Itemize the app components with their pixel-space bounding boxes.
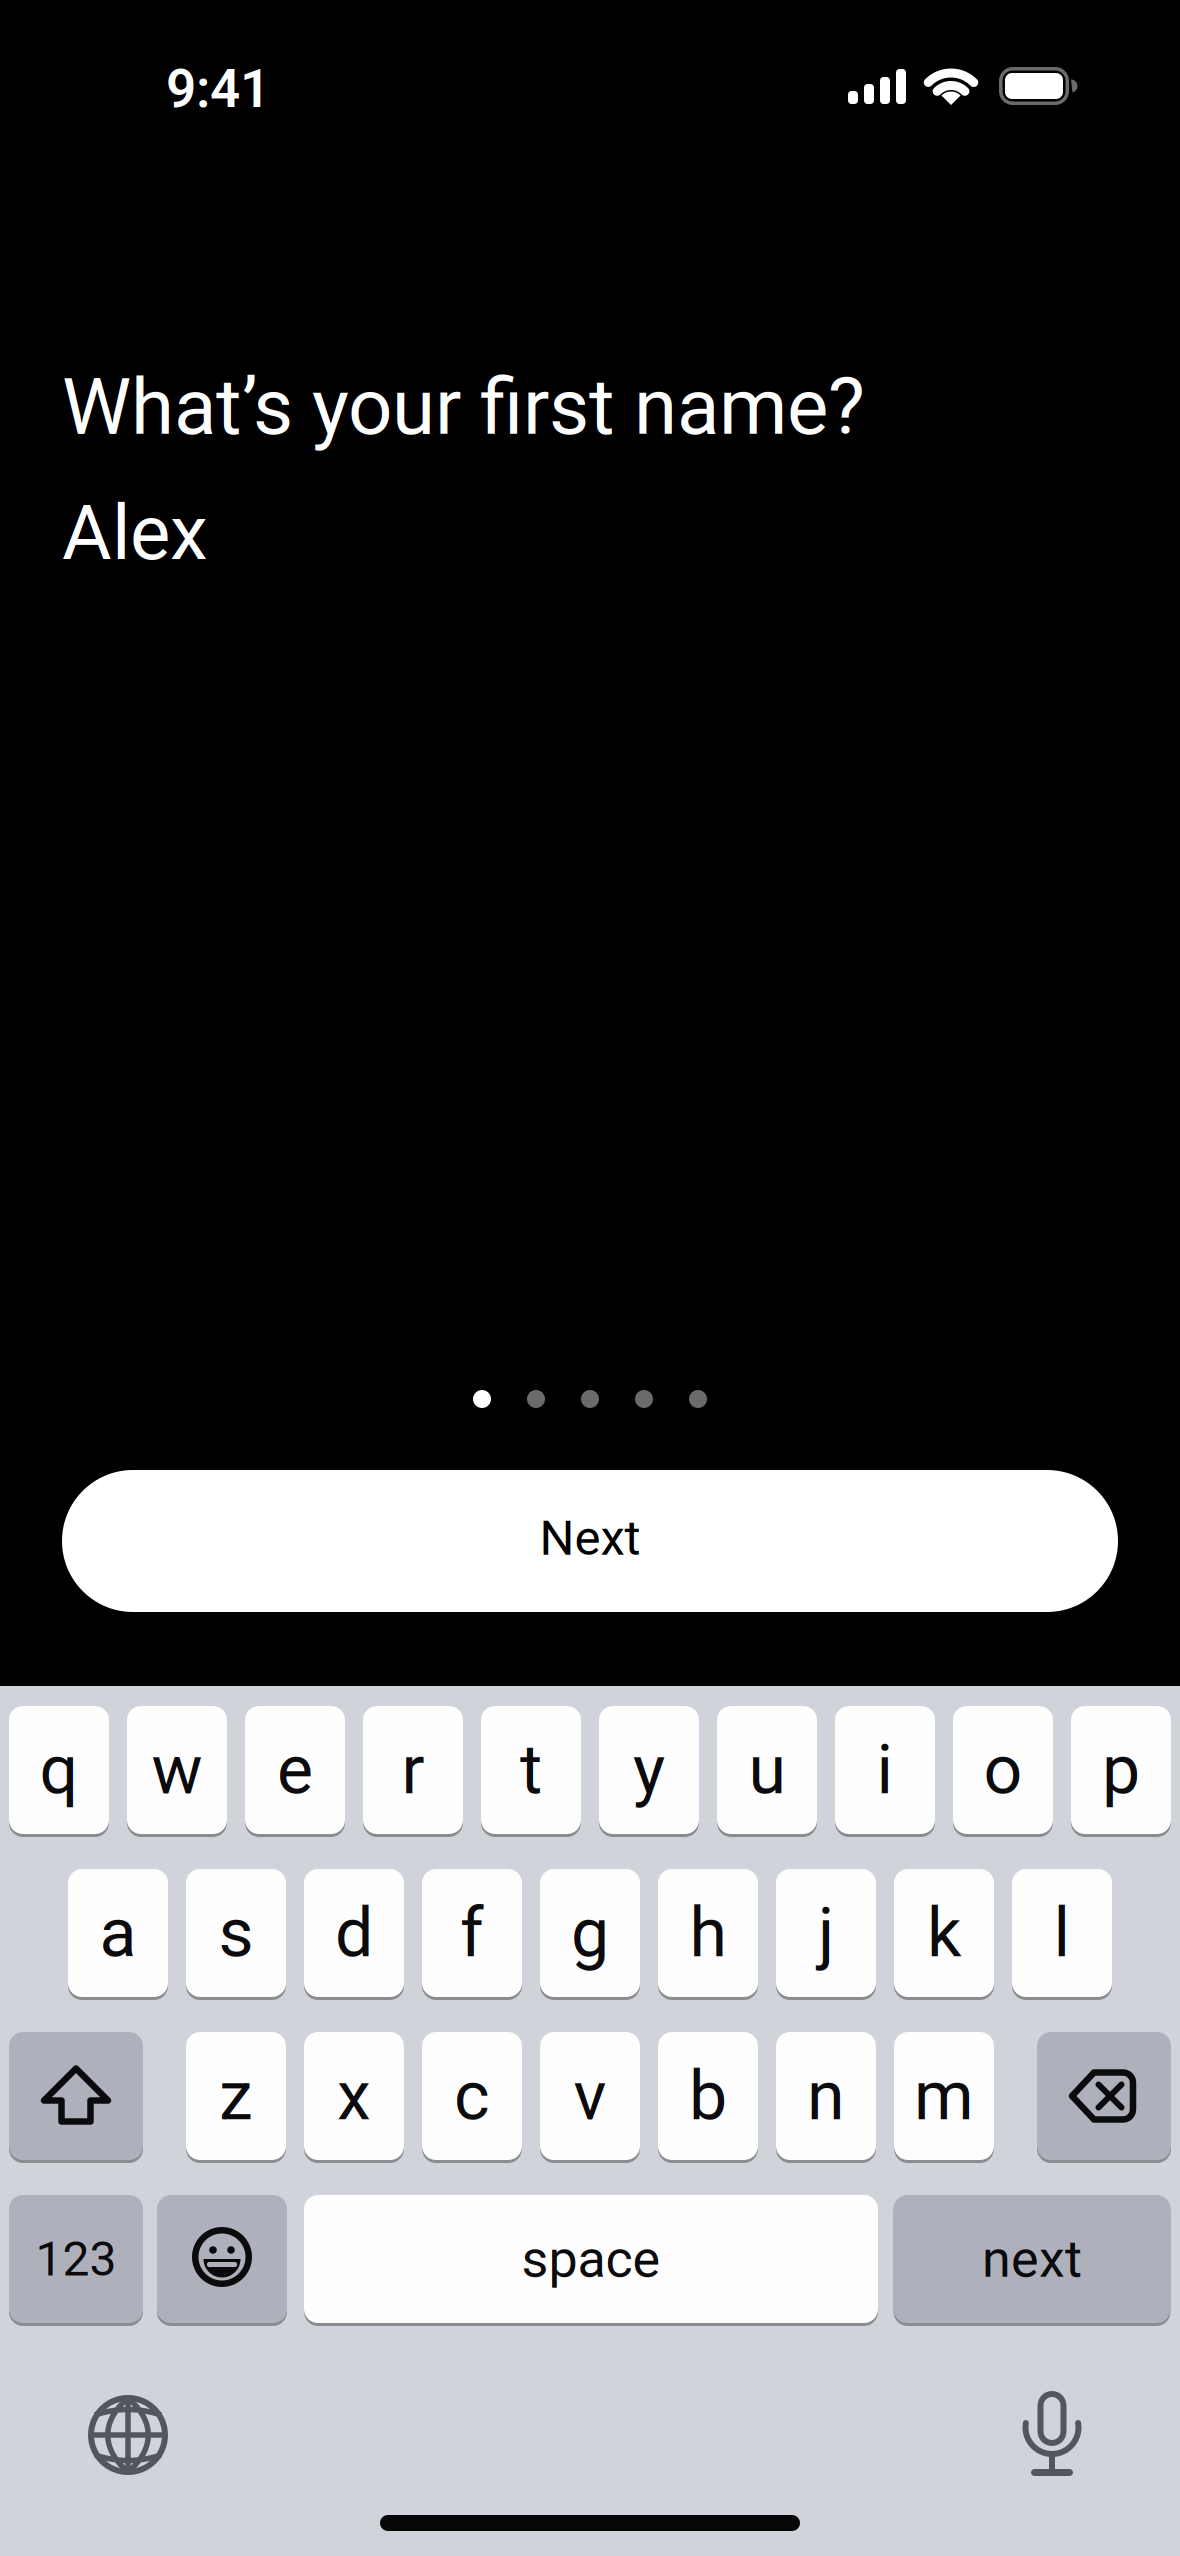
staticText: 123 (35, 2231, 116, 2287)
staticText: r (401, 1730, 424, 1810)
button[interactable]: h (658, 1867, 758, 1998)
staticText: f (460, 1893, 484, 1973)
staticText: space (521, 2228, 660, 2289)
button[interactable]: space (304, 2193, 878, 2324)
button[interactable]: Dictation (1004, 2385, 1100, 2481)
staticText: 9:41 (166, 58, 270, 120)
button[interactable]: t (481, 1704, 581, 1835)
staticText: u (748, 1730, 785, 1810)
button[interactable]: b (658, 2030, 758, 2161)
staticText: Next (539, 1509, 640, 1567)
button[interactable]: z (186, 2030, 286, 2161)
staticText: p (1102, 1730, 1140, 1810)
staticText: n (807, 2056, 845, 2136)
staticText: t (520, 1730, 542, 1810)
button[interactable]: 123 (9, 2193, 143, 2324)
button[interactable]: u (717, 1704, 817, 1835)
staticText: l (1053, 1893, 1070, 1973)
button[interactable]: l (1012, 1867, 1112, 1998)
staticText: a (99, 1893, 136, 1973)
staticText: c (454, 2056, 490, 2136)
button[interactable]: g (540, 1867, 640, 1998)
staticText: Alex (62, 488, 208, 578)
staticText: w (151, 1730, 202, 1810)
staticText: h (689, 1893, 726, 1973)
button[interactable]: Next (62, 1470, 1118, 1612)
button[interactable]: s (186, 1867, 286, 1998)
staticText: m (914, 2056, 974, 2136)
button[interactable]: f (422, 1867, 522, 1998)
button[interactable]: Shift (9, 2030, 143, 2161)
button[interactable]: q (9, 1704, 109, 1835)
button[interactable]: c (422, 2030, 522, 2161)
button[interactable]: n (776, 2030, 876, 2161)
staticText: o (983, 1730, 1022, 1810)
staticText: g (571, 1893, 609, 1973)
button[interactable]: v (540, 2030, 640, 2161)
staticText: d (335, 1893, 373, 1973)
button[interactable]: Next keyboard (80, 2387, 176, 2483)
staticText: z (219, 2056, 253, 2136)
staticText: What’s your first name? (62, 361, 865, 453)
staticText: next (982, 2228, 1082, 2289)
staticText: x (337, 2056, 371, 2136)
staticText: q (39, 1730, 78, 1810)
button[interactable]: o (953, 1704, 1053, 1835)
button[interactable]: Emoji (157, 2193, 287, 2324)
staticText: j (818, 1893, 834, 1973)
button[interactable]: d (304, 1867, 404, 1998)
staticText: k (927, 1893, 961, 1973)
button[interactable]: j (776, 1867, 876, 1998)
button[interactable]: y (599, 1704, 699, 1835)
button[interactable]: next (893, 2193, 1170, 2324)
button[interactable]: w (127, 1704, 227, 1835)
button[interactable]: k (894, 1867, 994, 1998)
button[interactable]: Delete (1037, 2030, 1171, 2161)
button[interactable]: m (894, 2030, 994, 2161)
button[interactable]: e (245, 1704, 345, 1835)
staticText: y (633, 1730, 665, 1810)
button[interactable]: a (68, 1867, 168, 1998)
staticText: v (573, 2056, 606, 2136)
staticText: s (218, 1893, 253, 1973)
staticText: b (689, 2056, 727, 2136)
button[interactable]: r (363, 1704, 463, 1835)
button[interactable]: p (1071, 1704, 1171, 1835)
button[interactable]: i (835, 1704, 935, 1835)
button[interactable]: x (304, 2030, 404, 2161)
staticText: i (876, 1730, 893, 1810)
staticText: e (277, 1730, 313, 1810)
